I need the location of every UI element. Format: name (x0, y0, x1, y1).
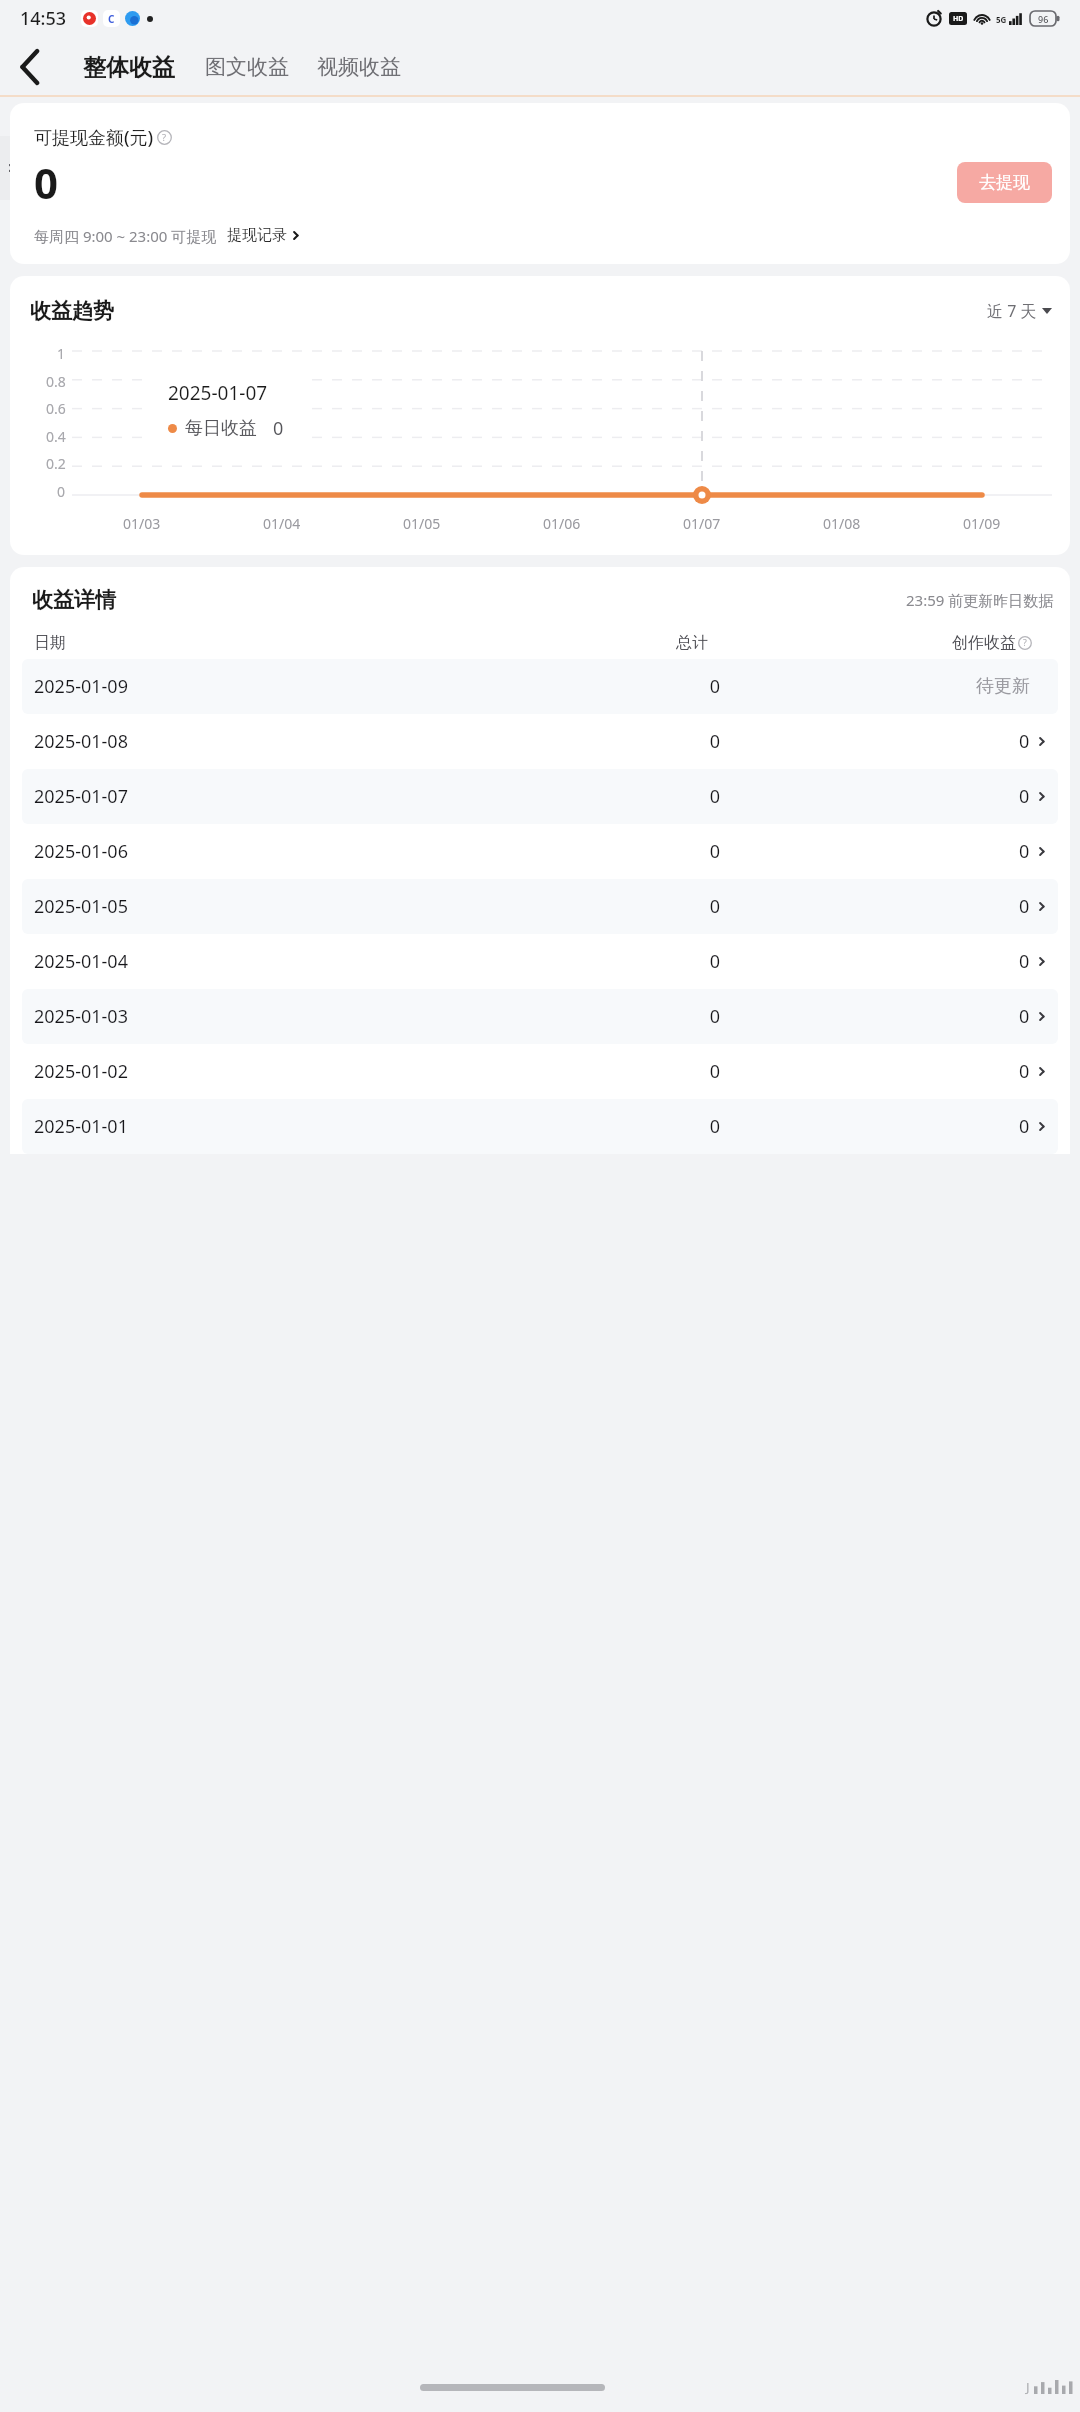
button[interactable]: 视频收益 (314, 48, 404, 86)
button[interactable]: 2025-01-06 (22, 824, 1058, 879)
staticText: 0 (461, 1004, 720, 1029)
staticText: 0 (461, 949, 720, 974)
staticText: 0 (273, 416, 284, 441)
staticText: 图文收益 (205, 54, 289, 80)
staticText: 去提现 (979, 172, 1030, 193)
staticText: 2025-01-07 (168, 380, 268, 406)
staticText: 0.4 (46, 427, 66, 446)
staticText: 2025-01-02 (34, 1059, 461, 1084)
button[interactable]: 2025-01-04 (22, 934, 1058, 989)
staticText: 0 (461, 784, 720, 809)
staticText: 0 (461, 729, 720, 754)
staticText: 01/08 (823, 514, 861, 533)
staticText: 0 (461, 894, 720, 919)
button[interactable]: 2025-01-01 (22, 1099, 1058, 1154)
staticText: 2025-01-07 (34, 784, 461, 809)
staticText: 0 (461, 674, 720, 699)
staticText: 0 (1019, 729, 1030, 754)
button[interactable]: 2025-01-02 (22, 1044, 1058, 1099)
button[interactable]: 去提现 (957, 162, 1052, 203)
staticText: C (108, 12, 115, 26)
staticText: 2025-01-09 (34, 674, 461, 699)
staticText: 0 (1019, 1004, 1030, 1029)
staticText: 01/05 (403, 514, 441, 533)
button[interactable]: 整体收益 (80, 47, 178, 88)
staticText: ? (1023, 637, 1027, 649)
staticText: ? (162, 131, 167, 144)
staticText: 2025-01-06 (34, 839, 461, 864)
staticText: 总计 (449, 633, 708, 653)
staticText: 5G (996, 14, 1007, 25)
staticText: 0 (34, 154, 59, 211)
staticText: 0.6 (46, 399, 66, 418)
staticText: 0.8 (46, 372, 66, 391)
staticText: 0 (461, 1059, 720, 1084)
staticText: 2025-01-04 (34, 949, 461, 974)
staticText: 0 (1019, 1114, 1030, 1139)
staticText: 2025-01-05 (34, 894, 461, 919)
button[interactable]: 2025-01-08 (22, 714, 1058, 769)
button[interactable] (0, 136, 22, 200)
button[interactable]: 近 7 天 (985, 296, 1054, 326)
staticText: 01/03 (123, 514, 161, 533)
staticText: 2025-01-03 (34, 1004, 461, 1029)
staticText: 每周四 9:00 ~ 23:00 可提现 (34, 226, 217, 246)
staticText: 近 7 天 (987, 300, 1037, 322)
staticText: 视频收益 (317, 54, 401, 80)
staticText: Ј (1026, 2378, 1030, 2396)
staticText: 14:53 (20, 6, 67, 31)
staticText: 0 (1019, 839, 1030, 864)
staticText: 0 (1019, 1059, 1030, 1084)
button[interactable]: 2025-01-07 (22, 769, 1058, 824)
staticText: 2025-01-08 (34, 729, 461, 754)
staticText: 0 (461, 1114, 720, 1139)
staticText: 整体收益 (83, 53, 175, 82)
staticText: 0.2 (46, 454, 66, 473)
staticText: 01/09 (963, 514, 1001, 533)
staticText: 0 (1019, 949, 1030, 974)
button[interactable]: 2025-01-05 (22, 879, 1058, 934)
staticText: 每日收益 (185, 417, 257, 440)
button[interactable]: 2025-01-03 (22, 989, 1058, 1044)
button[interactable]: Back (0, 37, 60, 97)
button[interactable]: 2025-01-09 (22, 659, 1058, 714)
staticText: 日期 (34, 633, 449, 653)
button[interactable]: 图文收益 (202, 48, 292, 86)
staticText: 1 (57, 344, 66, 363)
staticText: 可提现金额(元) (34, 125, 154, 150)
staticText: 收益详情 (32, 587, 116, 613)
staticText: 0 (1019, 894, 1030, 919)
staticText: 01/07 (683, 514, 721, 533)
staticText: 23:59 前更新昨日数据 (906, 590, 1054, 610)
staticText: 01/04 (263, 514, 301, 533)
staticText: 0 (461, 839, 720, 864)
staticText: 0 (57, 482, 66, 501)
button[interactable]: 提现记录 (227, 223, 299, 248)
staticText: 2025-01-01 (34, 1114, 461, 1139)
staticText: 01/06 (543, 514, 581, 533)
staticText: 提现记录 (227, 226, 287, 245)
staticText: 收益趋势 (30, 298, 114, 324)
staticText: 待更新 (976, 675, 1030, 698)
staticText: 96 (1038, 13, 1049, 25)
staticText: 0 (1019, 784, 1030, 809)
staticText: 创作收益 (952, 633, 1016, 653)
staticText: HD (953, 14, 964, 24)
